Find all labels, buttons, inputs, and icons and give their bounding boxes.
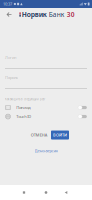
button[interactable]: Назад (3, 8, 14, 21)
staticText: Банк (47, 10, 67, 19)
button[interactable]: Пин-код (5, 103, 87, 112)
button[interactable]: Домой (40, 185, 52, 200)
staticText: ВОЙТИ (53, 132, 67, 138)
staticText: Touch ID (16, 114, 31, 119)
button[interactable]: Обзор (18, 185, 30, 200)
button[interactable]: ОТМЕНА (29, 129, 50, 140)
staticText: Как входить в следующий раз? (5, 97, 45, 101)
button[interactable]: Демо-версия (34, 146, 57, 155)
staticText: Пин-код (16, 105, 30, 110)
staticText: ОТМЕНА (31, 132, 48, 138)
button[interactable]: ВОЙТИ (51, 130, 69, 139)
staticText: 10:37 (3, 1, 12, 7)
staticText: 3 (67, 10, 71, 19)
staticText: Пароль (5, 75, 18, 80)
staticText: Норвик (22, 10, 47, 19)
staticText: Логин (5, 55, 16, 60)
button[interactable]: Touch ID (5, 112, 87, 121)
button[interactable]: Назад (60, 185, 72, 200)
staticText: Демо-версия (34, 148, 57, 153)
staticText: 0 (71, 10, 75, 19)
